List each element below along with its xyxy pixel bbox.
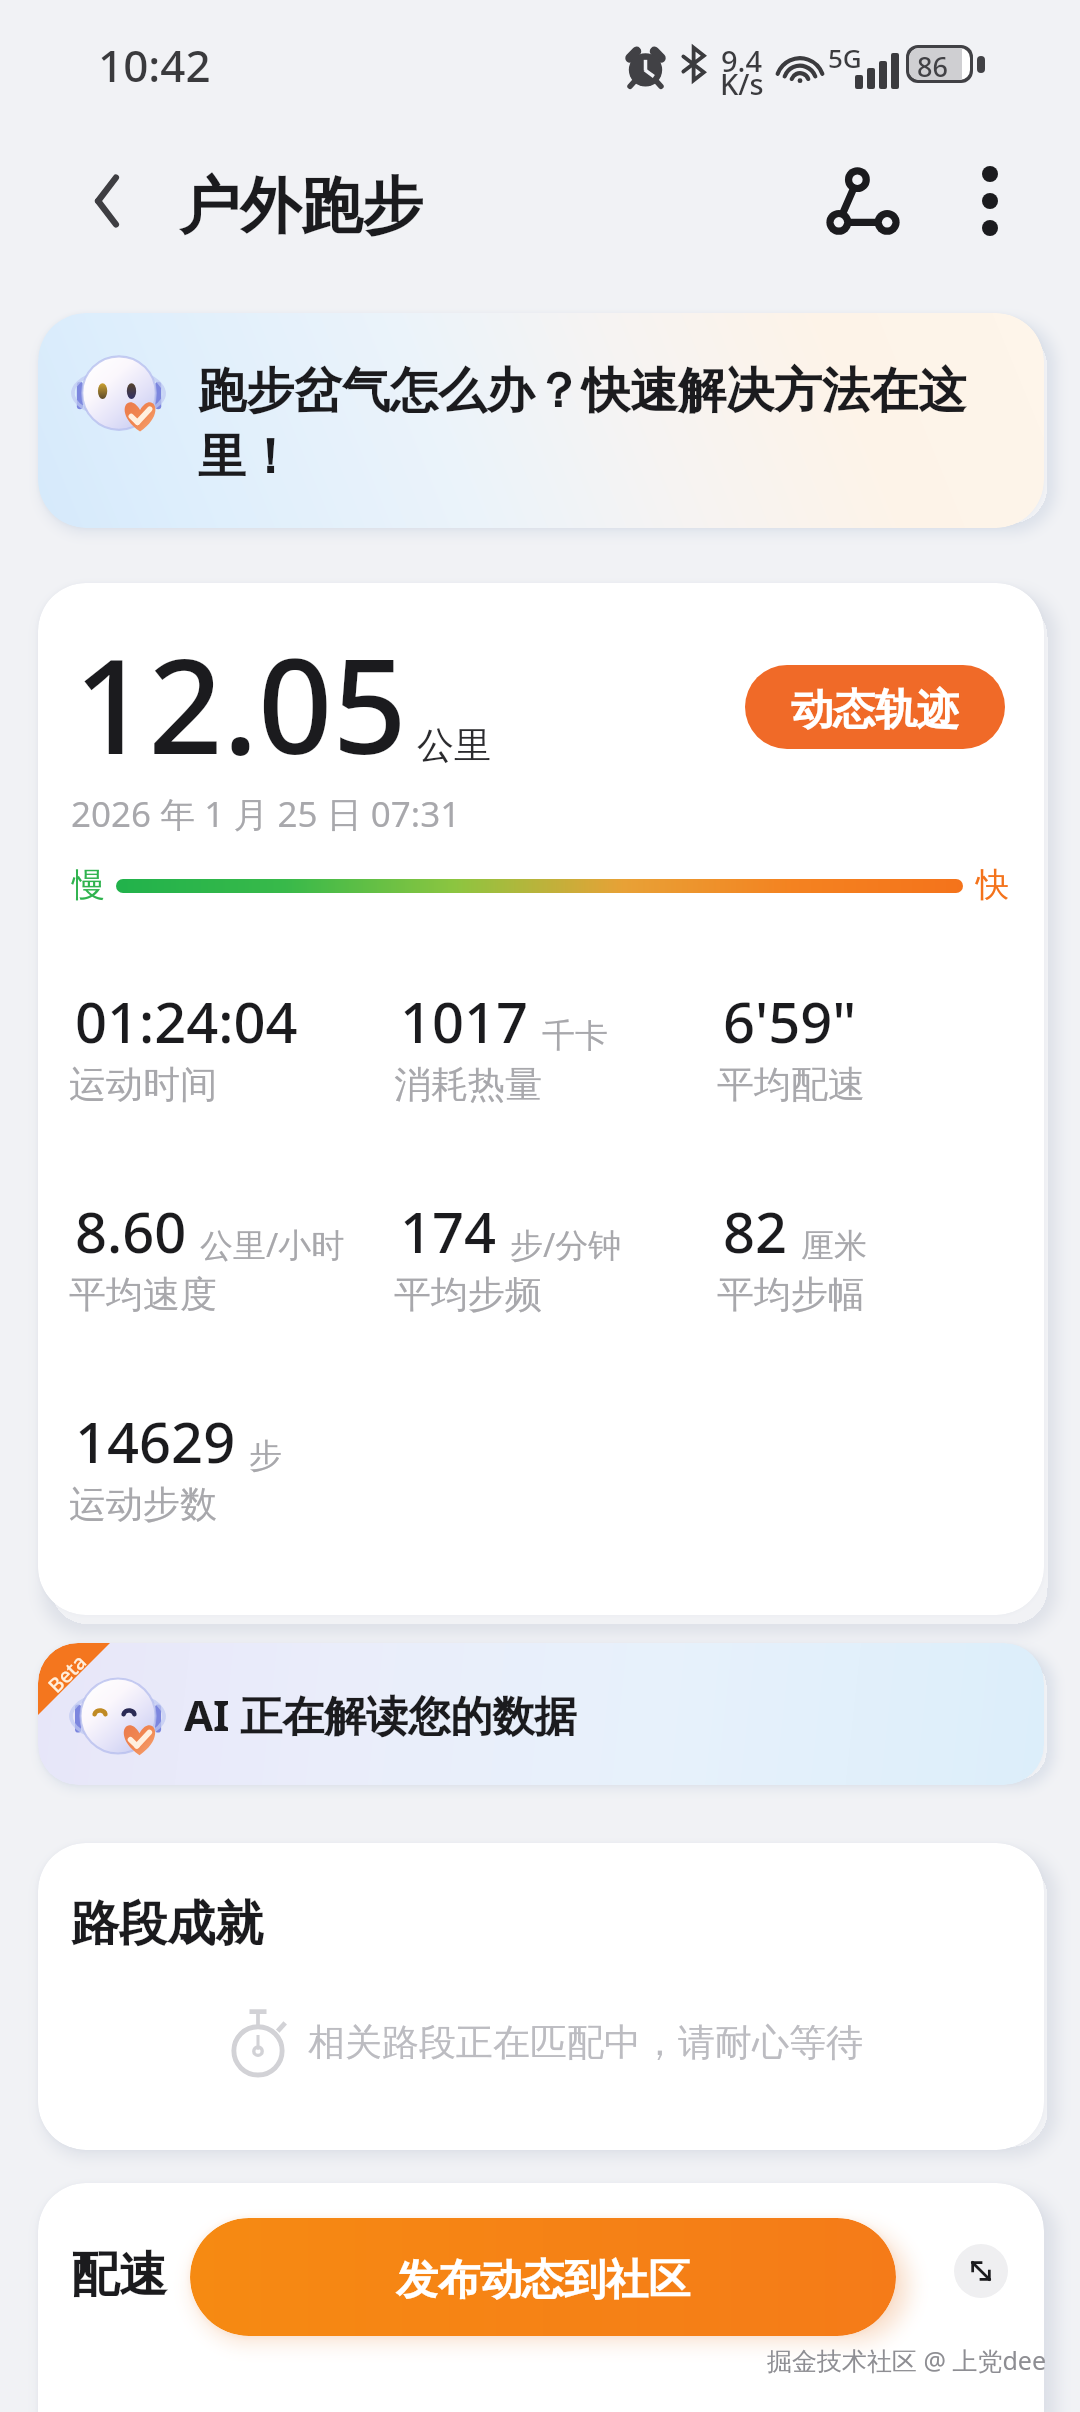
staticText: AI 正在解读您的数据 [184, 1686, 577, 1743]
staticText: 步/分钟 [510, 1222, 622, 1267]
button[interactable]: 发布动态到社区 [190, 2218, 896, 2336]
staticText: 174 [400, 1193, 497, 1269]
staticText: 发布动态到社区 [396, 2254, 690, 2307]
staticText: 快 [976, 864, 1009, 906]
staticText: 动态轨迹 [791, 684, 959, 737]
staticText: Beta [42, 1648, 92, 1699]
staticText: 8.60 [75, 1193, 187, 1269]
staticText: 步 [249, 1435, 282, 1477]
staticText: 配速 [71, 2245, 167, 2305]
staticText: 路段成就 [71, 1894, 263, 1954]
staticText: 10:42 [98, 35, 211, 95]
staticText: 01:24:04 [75, 983, 298, 1059]
staticText: 1017 [400, 983, 529, 1059]
staticText: 厘米 [801, 1225, 867, 1267]
button[interactable]: More options [942, 153, 1038, 249]
staticText: 公里 [417, 722, 491, 769]
staticText: 6'59" [723, 983, 857, 1059]
staticText: 掘金技术社区 @ 上党dee [767, 2343, 1047, 2377]
button[interactable]: 跑步岔气怎么办？快速解决方法在这里！ [38, 313, 1044, 528]
staticText: 公里/小时 [200, 1222, 345, 1267]
button[interactable]: Back [62, 156, 152, 246]
staticText: 12.05 [74, 615, 407, 792]
staticText: 平均步幅 [717, 1271, 865, 1318]
staticText: 5G [828, 40, 862, 75]
staticText: 86 [917, 48, 948, 80]
staticText: 14629 [75, 1403, 236, 1479]
staticText: K/s [720, 64, 764, 103]
staticText: 相关路段正在匹配中，请耐心等待 [308, 2019, 863, 2066]
staticText: 户外跑步 [179, 168, 423, 245]
staticText: 平均配速 [717, 1061, 865, 1108]
staticText: 平均速度 [69, 1271, 217, 1318]
button[interactable]: Expand [954, 2244, 1008, 2298]
button[interactable]: Beta [38, 1643, 1044, 1785]
button[interactable]: 动态轨迹 [745, 665, 1005, 749]
button[interactable]: 路段成就 [38, 1843, 1044, 2150]
staticText: 82 [723, 1193, 788, 1269]
staticText: 跑步岔气怎么办？快速解决方法在这里！ [198, 361, 988, 488]
staticText: 2026 年 1 月 25 日 07:31 [71, 790, 461, 838]
staticText: 平均步频 [394, 1271, 542, 1318]
staticText: 运动步数 [69, 1481, 217, 1528]
button[interactable]: 配速 [38, 2183, 1044, 2412]
staticText: 9.4 [721, 41, 763, 80]
staticText: 运动时间 [69, 1061, 217, 1108]
staticText: 千卡 [542, 1015, 608, 1057]
staticText: 慢 [72, 864, 105, 906]
staticText: 消耗热量 [394, 1061, 542, 1108]
button[interactable]: Share [815, 153, 911, 249]
